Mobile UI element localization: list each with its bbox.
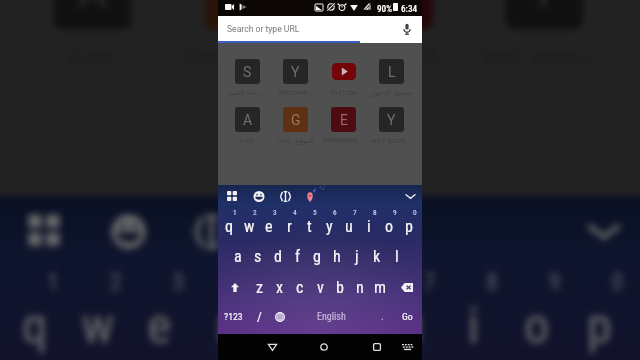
- button[interactable]: d: [268, 241, 288, 271]
- button[interactable]: Stickers: [267, 208, 311, 258]
- button[interactable]: A: [223, 107, 271, 145]
- button[interactable]: Home: [313, 336, 335, 358]
- button[interactable]: Voice search: [400, 22, 414, 36]
- button[interactable]: j: [347, 241, 367, 271]
- staticText: s: [254, 247, 262, 266]
- button[interactable]: u: [339, 208, 359, 239]
- button[interactable]: Search or type URL: [218, 16, 422, 41]
- button[interactable]: h: [327, 241, 347, 271]
- staticText: 8: [486, 268, 499, 296]
- button[interactable]: i: [359, 208, 379, 239]
- button[interactable]: E: [317, 0, 467, 70]
- button[interactable]: Emoji: [100, 205, 157, 258]
- button[interactable]: Y: [367, 107, 415, 145]
- button[interactable]: w: [66, 268, 129, 360]
- staticText: 5: [298, 268, 310, 296]
- staticText: v: [317, 278, 324, 297]
- button[interactable]: e: [129, 268, 191, 360]
- staticText: 4: [235, 268, 248, 296]
- staticText: Welcome...: [278, 89, 313, 97]
- staticText: Y: [530, 0, 558, 17]
- staticText: L: [388, 64, 396, 80]
- button[interactable]: Backspace: [392, 272, 422, 302]
- button[interactable]: Back: [261, 336, 283, 358]
- staticText: y: [339, 296, 361, 356]
- button[interactable]: Emoji: [250, 188, 268, 205]
- button[interactable]: Stickers: [303, 189, 317, 205]
- button[interactable]: l: [387, 241, 407, 271]
- staticText: w: [82, 296, 116, 356]
- button[interactable]: Apps: [19, 205, 69, 258]
- staticText: 6: [333, 208, 337, 217]
- button[interactable]: q: [219, 208, 239, 239]
- button[interactable]: G: [271, 107, 319, 145]
- button[interactable]: y: [319, 208, 339, 239]
- staticText: w: [244, 217, 255, 236]
- button[interactable]: e: [259, 208, 279, 239]
- button[interactable]: S: [223, 59, 271, 97]
- button[interactable]: t: [254, 268, 317, 360]
- button[interactable]: G: [166, 0, 317, 70]
- button[interactable]: /: [249, 302, 270, 331]
- button[interactable]: m: [370, 272, 390, 302]
- button[interactable]: g: [307, 241, 327, 271]
- button[interactable]: YouTube: [319, 59, 367, 97]
- button[interactable]: Apps: [224, 188, 240, 205]
- button[interactable]: E: [319, 107, 367, 145]
- button[interactable]: A: [16, 0, 166, 70]
- staticText: Search or type URL: [227, 24, 300, 34]
- button[interactable]: Text editing: [277, 188, 294, 205]
- button[interactable]: Y: [467, 0, 618, 70]
- button[interactable]: v: [310, 272, 330, 302]
- button[interactable]: z: [250, 272, 270, 302]
- button[interactable]: Recents: [366, 336, 388, 358]
- button[interactable]: w: [239, 208, 259, 239]
- button[interactable]: Y: [271, 59, 319, 97]
- button[interactable]: o: [505, 268, 568, 360]
- staticText: 5: [313, 208, 317, 217]
- button[interactable]: u: [380, 268, 442, 360]
- button[interactable]: ?123: [218, 302, 248, 331]
- button[interactable]: t: [299, 208, 319, 239]
- button[interactable]: .: [375, 302, 390, 331]
- staticText: e: [147, 296, 173, 356]
- button[interactable]: r: [279, 208, 299, 239]
- staticText: 2: [253, 208, 257, 217]
- staticText: r: [287, 217, 292, 236]
- button[interactable]: Change language: [270, 302, 290, 331]
- button[interactable]: q: [3, 268, 66, 360]
- staticText: 7: [353, 208, 357, 217]
- staticText: 1: [47, 268, 60, 296]
- button[interactable]: o: [379, 208, 399, 239]
- button[interactable]: Switch keyboard: [396, 336, 418, 358]
- staticText: Goo.. الموقع: [185, 45, 301, 70]
- button[interactable]: Text editing: [185, 205, 238, 258]
- button[interactable]: Shift: [220, 272, 250, 302]
- button[interactable]: Hide keyboard: [403, 191, 418, 202]
- button[interactable]: y: [317, 268, 380, 360]
- staticText: E: [340, 112, 348, 128]
- staticText: t: [279, 296, 295, 356]
- button[interactable]: p: [399, 208, 419, 239]
- button[interactable]: k: [367, 241, 387, 271]
- button[interactable]: L: [367, 59, 415, 97]
- button[interactable]: x: [270, 272, 290, 302]
- button[interactable]: i: [442, 268, 505, 360]
- button[interactable]: b: [330, 272, 350, 302]
- button[interactable]: English: [288, 302, 375, 331]
- button[interactable]: p: [568, 268, 630, 360]
- button[interactable]: r: [191, 268, 254, 360]
- button[interactable]: Hide keyboard: [580, 214, 627, 249]
- button[interactable]: c: [290, 272, 310, 302]
- staticText: 90%: [377, 3, 393, 14]
- button[interactable]: s: [248, 241, 268, 271]
- staticText: A: [243, 112, 253, 128]
- staticText: u: [345, 217, 353, 236]
- button[interactable]: a: [228, 241, 248, 271]
- button[interactable]: f: [288, 241, 308, 271]
- button[interactable]: Go: [397, 302, 418, 331]
- staticText: 4: [293, 208, 297, 217]
- button[interactable]: n: [350, 272, 370, 302]
- staticText: 7: [423, 268, 436, 296]
